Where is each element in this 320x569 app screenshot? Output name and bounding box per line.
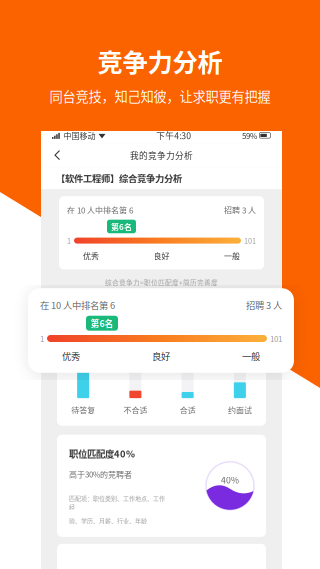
staticText: 在 10 人中排名第 6 (67, 204, 133, 216)
staticText: 在 10 人中排名第 6 (40, 298, 115, 312)
staticText: 职位匹配度40% (69, 447, 135, 460)
staticText: 一般 (224, 250, 240, 261)
staticText: 优秀 (83, 250, 99, 261)
staticText: 中国移动 (63, 130, 95, 141)
staticText: 招聘 3 人 (224, 204, 256, 216)
staticText: 不合适 (123, 404, 147, 416)
staticText: 匹配项：职位类别、工作地点、工作经 (69, 494, 165, 511)
staticText: 我的竞争力分析 (130, 149, 193, 161)
staticText: 1 (67, 235, 71, 246)
staticText: 良好 (152, 349, 170, 363)
staticText: 101 (244, 235, 256, 246)
staticText: 下午4:30 (156, 129, 191, 142)
staticText: 一般 (242, 349, 260, 363)
staticText: 验、学历、月薪、行业、年龄 (69, 516, 147, 525)
staticText: 竞争力分析 (97, 43, 222, 79)
staticText: 59% (242, 130, 257, 141)
staticText: 40% (221, 473, 239, 486)
staticText: 综合竞争力=职位匹配度+简历完善度 (105, 277, 218, 287)
staticText: 【软件工程师】综合竞争力分析 (56, 171, 182, 185)
staticText: 待答复 (71, 404, 95, 416)
staticText: 合适 (180, 404, 196, 416)
staticText: 同台竞技，知己知彼，让求职更有把握 (49, 86, 270, 106)
staticText: 1 (40, 333, 44, 344)
staticText: 良好 (153, 250, 169, 261)
button[interactable]: Back (52, 149, 64, 161)
staticText: 高于30%的竞聘者 (69, 468, 132, 480)
staticText: 优秀 (62, 349, 80, 363)
staticText: 第6名 (90, 317, 113, 329)
staticText: 第6名 (111, 221, 132, 232)
staticText: 约面试 (228, 404, 252, 416)
staticText: 101 (270, 333, 282, 344)
staticText: 招聘 3 人 (246, 298, 282, 312)
